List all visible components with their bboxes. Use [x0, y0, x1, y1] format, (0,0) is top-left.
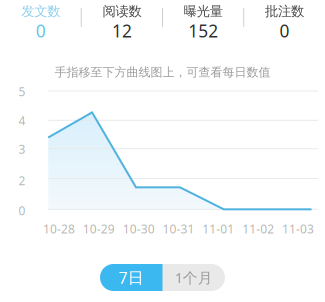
staticText: 2: [18, 172, 25, 188]
staticText: 12: [112, 19, 132, 42]
staticText: 3: [18, 141, 25, 157]
button[interactable]: 曝光量: [162, 0, 244, 48]
button[interactable]: 发文数: [0, 0, 81, 48]
staticText: 5: [18, 83, 25, 99]
staticText: 手指移至下方曲线图上，可查看每日数值: [54, 65, 270, 80]
button[interactable]: 阅读数: [81, 0, 162, 48]
staticText: 1个月: [175, 268, 213, 287]
staticText: 10-30: [123, 221, 155, 237]
staticText: 4: [18, 112, 25, 128]
staticText: 10-29: [83, 221, 115, 237]
staticText: 0: [279, 19, 289, 42]
button[interactable]: 批注数: [244, 0, 325, 48]
button[interactable]: 7日: [100, 264, 162, 291]
staticText: 7日: [119, 267, 144, 288]
staticText: 11-03: [282, 221, 314, 237]
staticText: 152: [188, 19, 218, 42]
staticText: 曝光量: [184, 3, 223, 19]
staticText: 发文数: [21, 3, 60, 19]
staticText: 10-28: [43, 221, 75, 237]
staticText: 批注数: [265, 3, 304, 19]
button[interactable]: 1个月: [162, 264, 225, 291]
staticText: 11-01: [202, 221, 234, 237]
staticText: 0: [18, 202, 25, 218]
staticText: 10-31: [162, 221, 194, 237]
staticText: 0: [36, 19, 46, 42]
staticText: 阅读数: [102, 3, 141, 19]
staticText: 11-02: [242, 221, 274, 237]
